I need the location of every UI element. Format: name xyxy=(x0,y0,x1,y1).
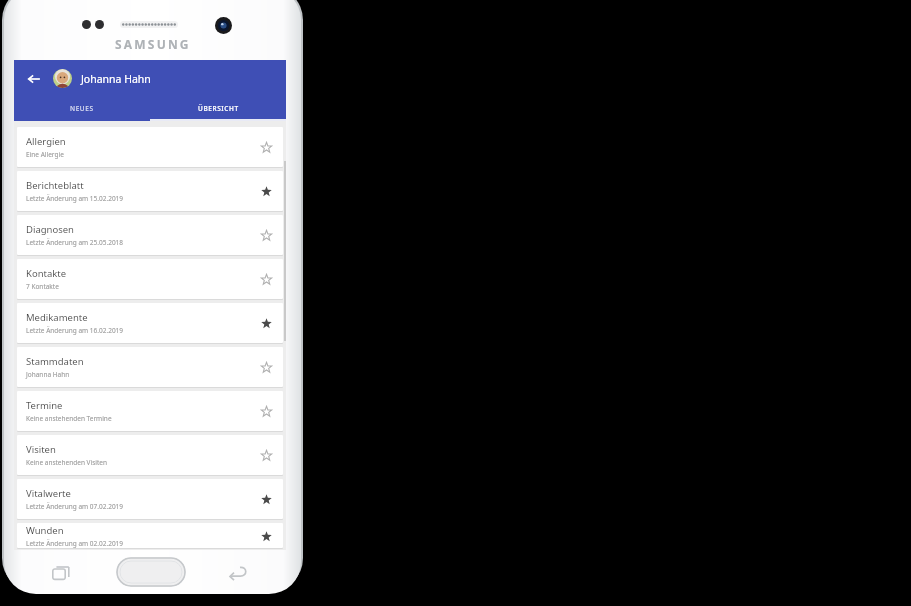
staticText: Visiten xyxy=(26,443,56,456)
staticText: NEUES xyxy=(70,104,94,113)
staticText: Johanna Hahn xyxy=(81,72,151,86)
button[interactable]: Favorit entfernen xyxy=(257,314,275,332)
staticText: Letzte Änderung am 15.02.2019 xyxy=(26,194,124,203)
button[interactable]: Termine xyxy=(17,391,283,431)
staticText: Stammdaten xyxy=(26,355,84,368)
staticText: Vitalwerte xyxy=(26,487,71,500)
staticText: Johanna Hahn xyxy=(26,370,70,379)
staticText: Keine anstehenden Visiten xyxy=(26,458,107,467)
button[interactable]: Vitalwerte xyxy=(17,479,283,519)
button[interactable]: Favorit entfernen xyxy=(257,182,275,200)
staticText: Diagnosen xyxy=(26,223,74,236)
staticText: Letzte Änderung am 16.02.2019 xyxy=(26,326,124,335)
staticText: SAMSUNG xyxy=(115,36,191,52)
staticText: Eine Allergie xyxy=(26,150,64,159)
staticText: Termine xyxy=(26,399,63,412)
button[interactable]: Visiten xyxy=(17,435,283,475)
button[interactable]: Favorit entfernen xyxy=(257,527,275,545)
button[interactable]: Als Favorit markieren xyxy=(257,138,275,156)
staticText: Kontakte xyxy=(26,267,67,280)
button[interactable]: NEUES xyxy=(14,97,150,119)
button[interactable]: Back xyxy=(228,563,248,583)
button[interactable]: Favorit entfernen xyxy=(257,490,275,508)
button[interactable]: Wunden xyxy=(17,523,283,548)
button[interactable]: Als Favorit markieren xyxy=(257,270,275,288)
button[interactable]: ÜBERSICHT xyxy=(150,97,286,119)
button[interactable]: Als Favorit markieren xyxy=(257,358,275,376)
button[interactable]: Zurück xyxy=(23,68,45,90)
button[interactable]: Als Favorit markieren xyxy=(257,226,275,244)
button[interactable]: Allergien xyxy=(17,127,283,167)
staticText: Wunden xyxy=(26,524,64,537)
button[interactable]: Als Favorit markieren xyxy=(257,446,275,464)
button[interactable]: Medikamente xyxy=(17,303,283,343)
staticText: Letzte Änderung am 25.05.2018 xyxy=(26,238,124,247)
button[interactable]: Kontakte xyxy=(17,259,283,299)
button[interactable]: Als Favorit markieren xyxy=(257,402,275,420)
staticText: Letzte Änderung am 07.02.2019 xyxy=(26,502,124,511)
button[interactable]: Diagnosen xyxy=(17,215,283,255)
button[interactable]: Berichteblatt xyxy=(17,171,283,211)
staticText: Berichteblatt xyxy=(26,179,84,192)
button[interactable]: Home xyxy=(116,557,186,587)
staticText: ÜBERSICHT xyxy=(198,104,239,113)
button[interactable]: Recents xyxy=(52,563,72,583)
staticText: Allergien xyxy=(26,135,66,148)
staticText: 7 Kontakte xyxy=(26,282,59,291)
button[interactable]: Stammdaten xyxy=(17,347,283,387)
staticText: Medikamente xyxy=(26,311,88,324)
staticText: Keine anstehenden Termine xyxy=(26,414,112,423)
staticText: Letzte Änderung am 02.02.2019 xyxy=(26,539,124,548)
